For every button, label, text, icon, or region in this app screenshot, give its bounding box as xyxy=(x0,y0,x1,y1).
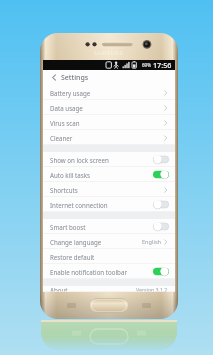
staticText: Virus scan xyxy=(50,119,80,127)
button[interactable]: About xyxy=(43,286,175,292)
button[interactable]: Change language xyxy=(43,234,175,249)
staticText: English xyxy=(142,238,162,246)
button[interactable]: Toggle on xyxy=(153,170,169,179)
staticText: 69% xyxy=(142,62,151,68)
staticText: Restore default xyxy=(50,253,95,261)
button[interactable]: Shortcuts xyxy=(43,182,175,197)
staticText: Cleaner xyxy=(50,134,73,142)
staticText: Show on lock screen xyxy=(50,156,109,164)
button[interactable]: Cleaner xyxy=(43,130,175,145)
staticText: Battery usage xyxy=(50,89,91,97)
button[interactable]: Restore default xyxy=(43,249,175,264)
staticText: About xyxy=(50,286,68,292)
button[interactable]: Virus scan xyxy=(43,115,175,130)
staticText: Settings xyxy=(61,73,89,83)
button[interactable]: Auto kill tasks xyxy=(43,167,175,182)
staticText: Shortcuts xyxy=(50,186,78,194)
button[interactable]: Toggle off xyxy=(153,222,169,231)
button[interactable]: Show on lock screen xyxy=(43,152,175,167)
button[interactable]: Internet connection xyxy=(43,197,175,212)
button[interactable]: Battery usage xyxy=(43,85,175,100)
button[interactable]: Home xyxy=(90,298,128,313)
staticText: Smart boost xyxy=(50,223,86,231)
button[interactable]: Smart boost xyxy=(43,219,175,234)
staticText: SAMSUNG xyxy=(94,50,125,57)
button[interactable]: Toggle off xyxy=(153,155,169,164)
staticText: Auto kill tasks xyxy=(50,171,91,179)
button[interactable]: Toggle off xyxy=(153,200,169,209)
button[interactable]: Data usage xyxy=(43,100,175,115)
staticText: Version 3.1.2 xyxy=(136,286,168,292)
staticText: Change language xyxy=(50,238,102,246)
staticText: Data usage xyxy=(50,104,83,112)
staticText: Enable notification toolbar xyxy=(50,268,127,276)
staticText: 17:56 xyxy=(153,60,172,70)
staticText: Internet connection xyxy=(50,201,108,209)
button[interactable]: Back xyxy=(48,72,59,83)
button[interactable]: Enable notification toolbar xyxy=(43,264,175,279)
button[interactable]: Toggle on xyxy=(153,267,169,276)
